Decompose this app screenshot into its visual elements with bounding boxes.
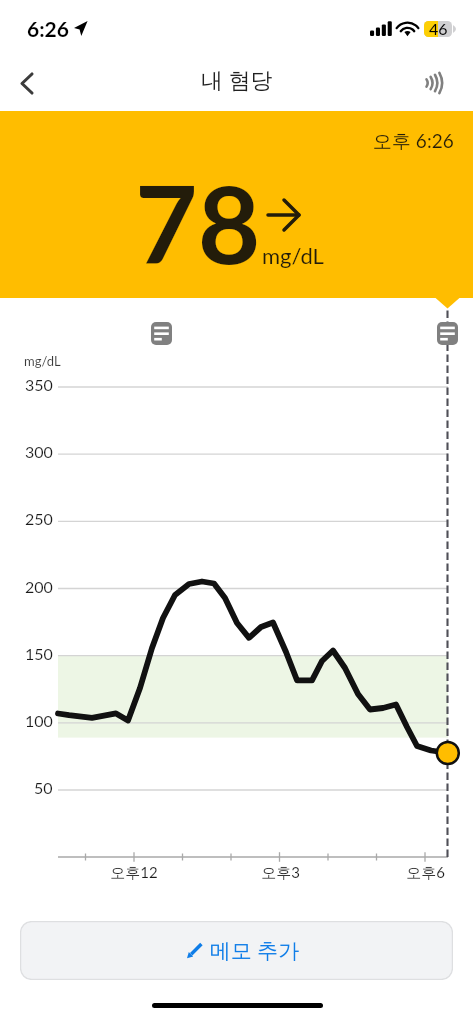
button[interactable]: Back — [4, 58, 50, 104]
staticText: 오후12 — [110, 863, 158, 882]
staticText: 50 — [34, 778, 53, 797]
button[interactable]: Note — [151, 322, 172, 345]
staticText: 6:26 — [27, 16, 69, 41]
button[interactable]: Scan sensor — [411, 60, 459, 106]
staticText: 78 — [135, 157, 261, 287]
staticText: 150 — [25, 644, 53, 663]
staticText: 100 — [25, 711, 53, 730]
staticText: 메모 추가 — [210, 937, 300, 964]
staticText: 200 — [25, 577, 53, 596]
staticText: 오후3 — [261, 863, 300, 882]
button[interactable]: Note — [437, 322, 458, 345]
staticText: 46 — [429, 21, 448, 35]
staticText: 300 — [25, 442, 53, 461]
staticText: mg/dL — [24, 353, 61, 369]
staticText: 오후 6:26 — [373, 129, 454, 153]
staticText: 내 혐당 — [201, 66, 273, 94]
staticText: 250 — [25, 509, 53, 528]
button[interactable]: 메모 추가 — [20, 921, 453, 980]
staticText: 350 — [25, 375, 53, 394]
staticText: mg/dL — [262, 242, 324, 268]
staticText: 오후6 — [406, 863, 445, 882]
